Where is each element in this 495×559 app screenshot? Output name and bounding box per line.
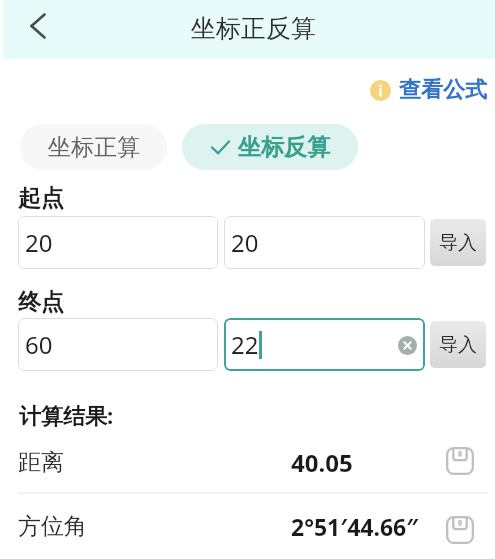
button[interactable]: Save (439, 509, 481, 551)
staticText: 方位角 (18, 512, 87, 541)
staticText: 终点 (18, 288, 64, 317)
staticText: 查看公式 (399, 76, 487, 104)
button[interactable]: 导入 (430, 219, 486, 266)
button[interactable]: 查看公式 (370, 76, 487, 104)
staticText: 22 (231, 328, 259, 361)
staticText: 20 (231, 226, 259, 259)
button[interactable]: 22 (224, 318, 425, 371)
staticText: 坐标反算 (238, 133, 330, 162)
staticText: 60 (25, 328, 53, 361)
button[interactable]: Save (439, 440, 481, 482)
button[interactable]: 导入 (430, 321, 486, 368)
button[interactable]: Clear (393, 331, 421, 359)
button[interactable]: 20 (18, 216, 218, 269)
staticText: 导入 (439, 231, 477, 255)
button[interactable]: Back (15, 3, 61, 49)
button[interactable]: 坐标反算 (182, 124, 358, 170)
button[interactable]: 坐标正算 (20, 124, 167, 170)
staticText: 起点 (18, 184, 64, 213)
staticText: 坐标正反算 (191, 13, 316, 44)
staticText: 计算结果: (19, 400, 114, 430)
button[interactable]: 20 (224, 216, 425, 269)
staticText: 距离 (18, 448, 64, 477)
staticText: 导入 (439, 333, 477, 357)
staticText: 40.05 (291, 446, 353, 479)
staticText: 坐标正算 (48, 133, 140, 162)
button[interactable]: 60 (18, 318, 218, 371)
staticText: 20 (25, 226, 53, 259)
staticText: 2°51′44.66″ (291, 511, 419, 542)
button[interactable]: 方位角 (0, 502, 495, 550)
button[interactable]: 距离 (0, 438, 495, 486)
